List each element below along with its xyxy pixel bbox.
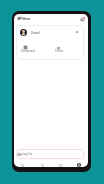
button[interactable]	[16, 25, 84, 40]
staticText: Daniel	[31, 31, 40, 35]
button[interactable]	[17, 45, 39, 56]
button[interactable]: Wallet	[52, 160, 68, 167]
button[interactable]	[48, 45, 70, 56]
button[interactable]: Search	[34, 160, 50, 167]
button[interactable]: Open navigation menu	[16, 15, 23, 22]
staticText: Log Out	[22, 152, 33, 156]
button[interactable]: Home	[14, 160, 30, 167]
staticText: Dashboard	[21, 49, 35, 53]
button[interactable]: Profile	[71, 160, 87, 167]
button[interactable]: Log Out	[16, 149, 84, 159]
button[interactable]: Account options	[74, 29, 80, 35]
staticText: Points	[55, 49, 63, 53]
staticText: Menu	[22, 17, 31, 21]
button[interactable]: Notifications	[79, 16, 86, 23]
